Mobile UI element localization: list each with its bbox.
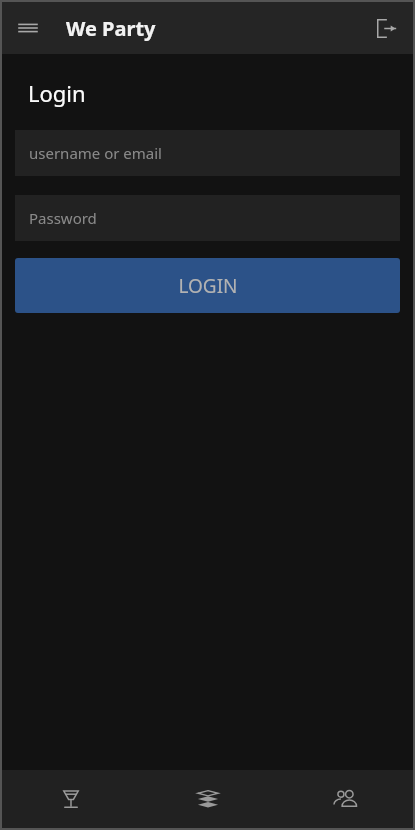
staticText: username or email (29, 143, 162, 163)
staticText: We Party (66, 15, 156, 42)
staticText: Login (28, 78, 86, 108)
button[interactable]: Log out (369, 11, 403, 45)
button[interactable]: Open navigation menu (12, 12, 44, 44)
staticText: Password (29, 208, 97, 228)
button[interactable]: Events (148, 770, 268, 828)
button[interactable]: Friends (285, 770, 405, 828)
button[interactable]: Password (15, 195, 400, 241)
button[interactable]: Drinks (11, 770, 131, 828)
staticText: LOGIN (178, 273, 238, 299)
button[interactable]: LOGIN (15, 258, 400, 313)
button[interactable]: username or email (15, 130, 400, 176)
